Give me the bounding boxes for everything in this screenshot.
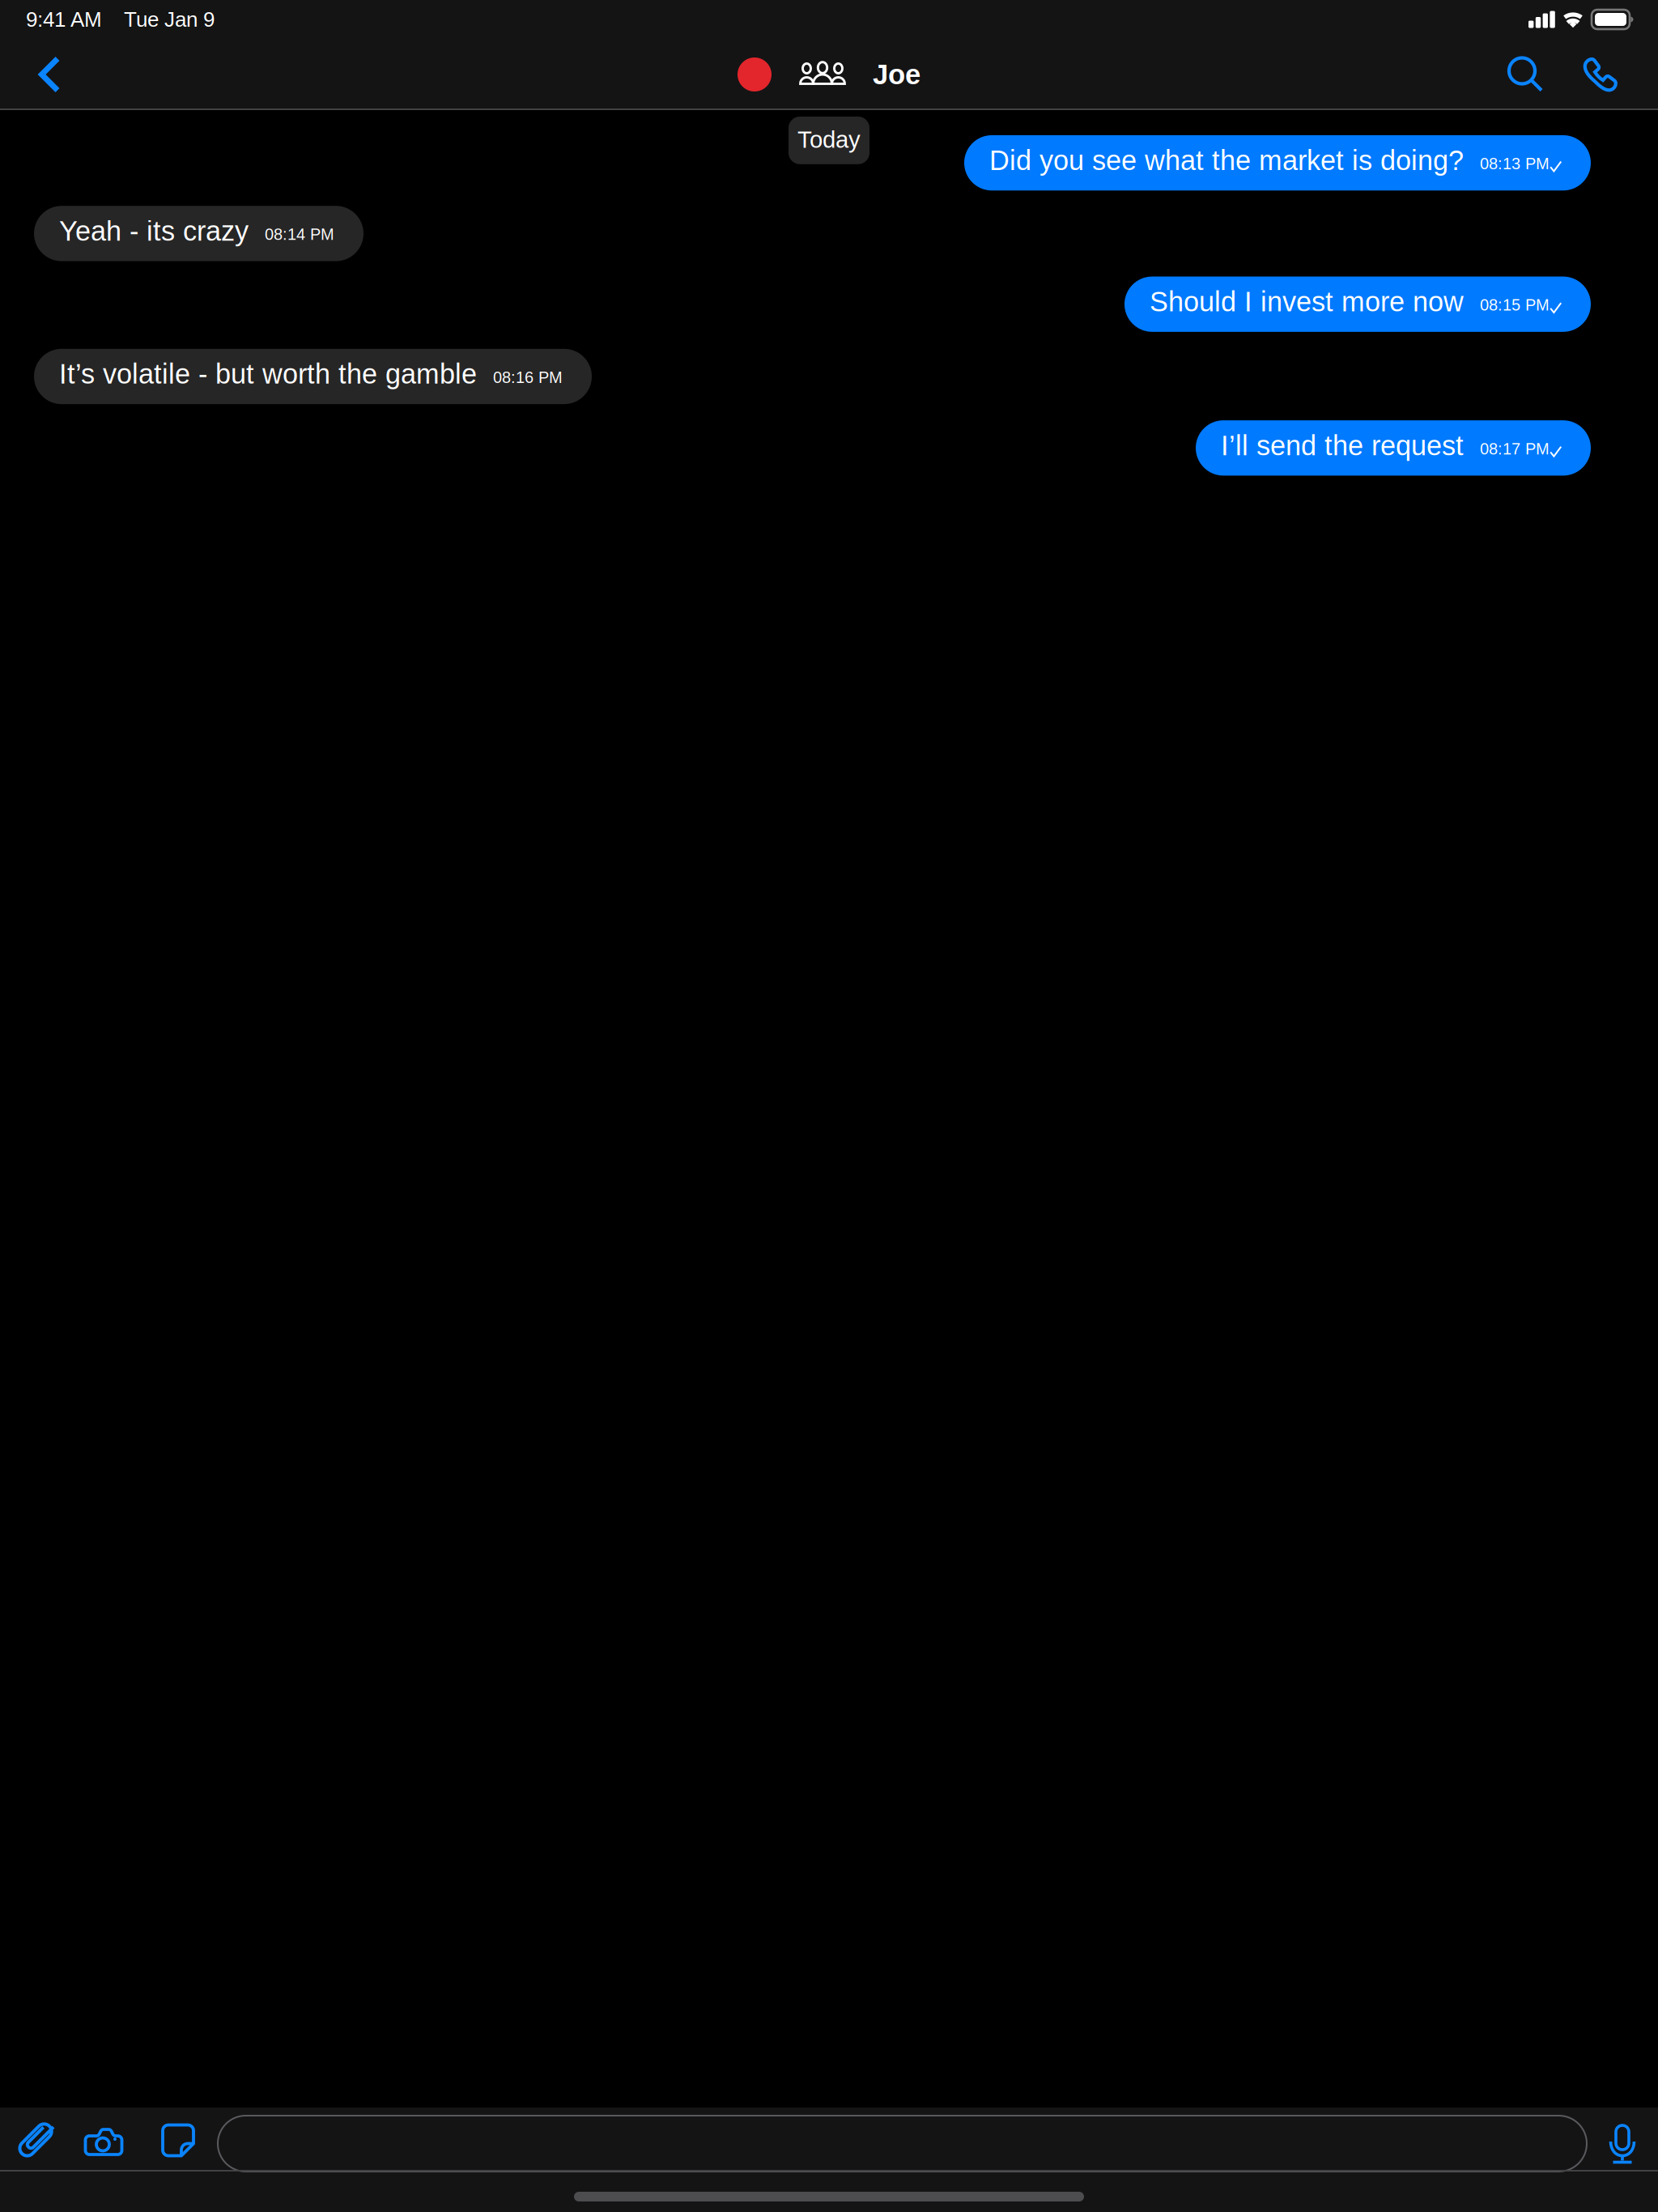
button[interactable]: Camera bbox=[83, 2127, 128, 2160]
staticText: Should I invest more now bbox=[1150, 286, 1464, 317]
staticText: 08:13 PM bbox=[1480, 155, 1550, 173]
button[interactable]: Attach bbox=[17, 2124, 54, 2163]
staticText: 08:15 PM bbox=[1480, 296, 1550, 314]
staticText: Joe bbox=[873, 59, 920, 90]
staticText: I’ll send the request bbox=[1221, 430, 1464, 461]
staticText: 9:41 AM bbox=[26, 8, 102, 31]
staticText: Did you see what the market is doing? bbox=[989, 145, 1464, 176]
staticText: Today bbox=[797, 126, 861, 153]
button[interactable]: Dictate bbox=[1609, 2123, 1636, 2164]
staticText: It’s volatile - but worth the gamble bbox=[59, 359, 477, 390]
staticText: Yeah - its crazy bbox=[59, 216, 249, 247]
staticText: Tue Jan 9 bbox=[124, 8, 215, 31]
button[interactable]: Search bbox=[1507, 56, 1544, 93]
button[interactable]: Stickers bbox=[161, 2126, 197, 2161]
button[interactable]: Call bbox=[1582, 56, 1618, 93]
staticText: 08:14 PM bbox=[265, 225, 334, 243]
button[interactable]: Back bbox=[0, 44, 80, 105]
staticText: 08:17 PM bbox=[1480, 440, 1550, 458]
staticText: 08:16 PM bbox=[493, 368, 563, 386]
button[interactable]: Message bbox=[218, 2116, 1587, 2172]
